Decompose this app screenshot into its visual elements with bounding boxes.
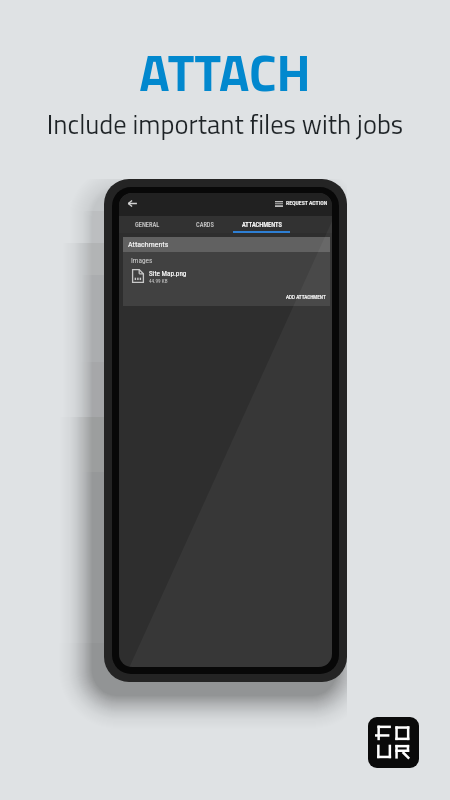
- staticText: Attachments: [128, 240, 169, 249]
- staticText: ATTACH: [0, 34, 450, 111]
- staticText: Site Map.png: [149, 269, 187, 277]
- staticText: GENERAL: [135, 221, 160, 229]
- button[interactable]: FOUR logo: [368, 717, 419, 768]
- staticText: CARDS: [196, 221, 214, 229]
- staticText: Include important files with jobs: [0, 104, 450, 144]
- staticText: Images: [131, 256, 153, 265]
- button[interactable]: Request action: [275, 200, 332, 207]
- staticText: ATTACHMENTS: [242, 221, 282, 229]
- staticText: REQUEST ACTION: [286, 200, 328, 207]
- staticText: ADD ATTACHMENT: [286, 294, 326, 300]
- button[interactable]: GENERAL: [119, 216, 176, 233]
- button[interactable]: ADD ATTACHMENT: [280, 293, 330, 301]
- staticText: 44.99 KB: [149, 278, 168, 284]
- button[interactable]: ATTACHMENTS: [233, 216, 290, 233]
- button[interactable]: Site Map.png: [123, 267, 330, 285]
- button[interactable]: Back: [126, 197, 139, 210]
- button[interactable]: CARDS: [176, 216, 233, 233]
